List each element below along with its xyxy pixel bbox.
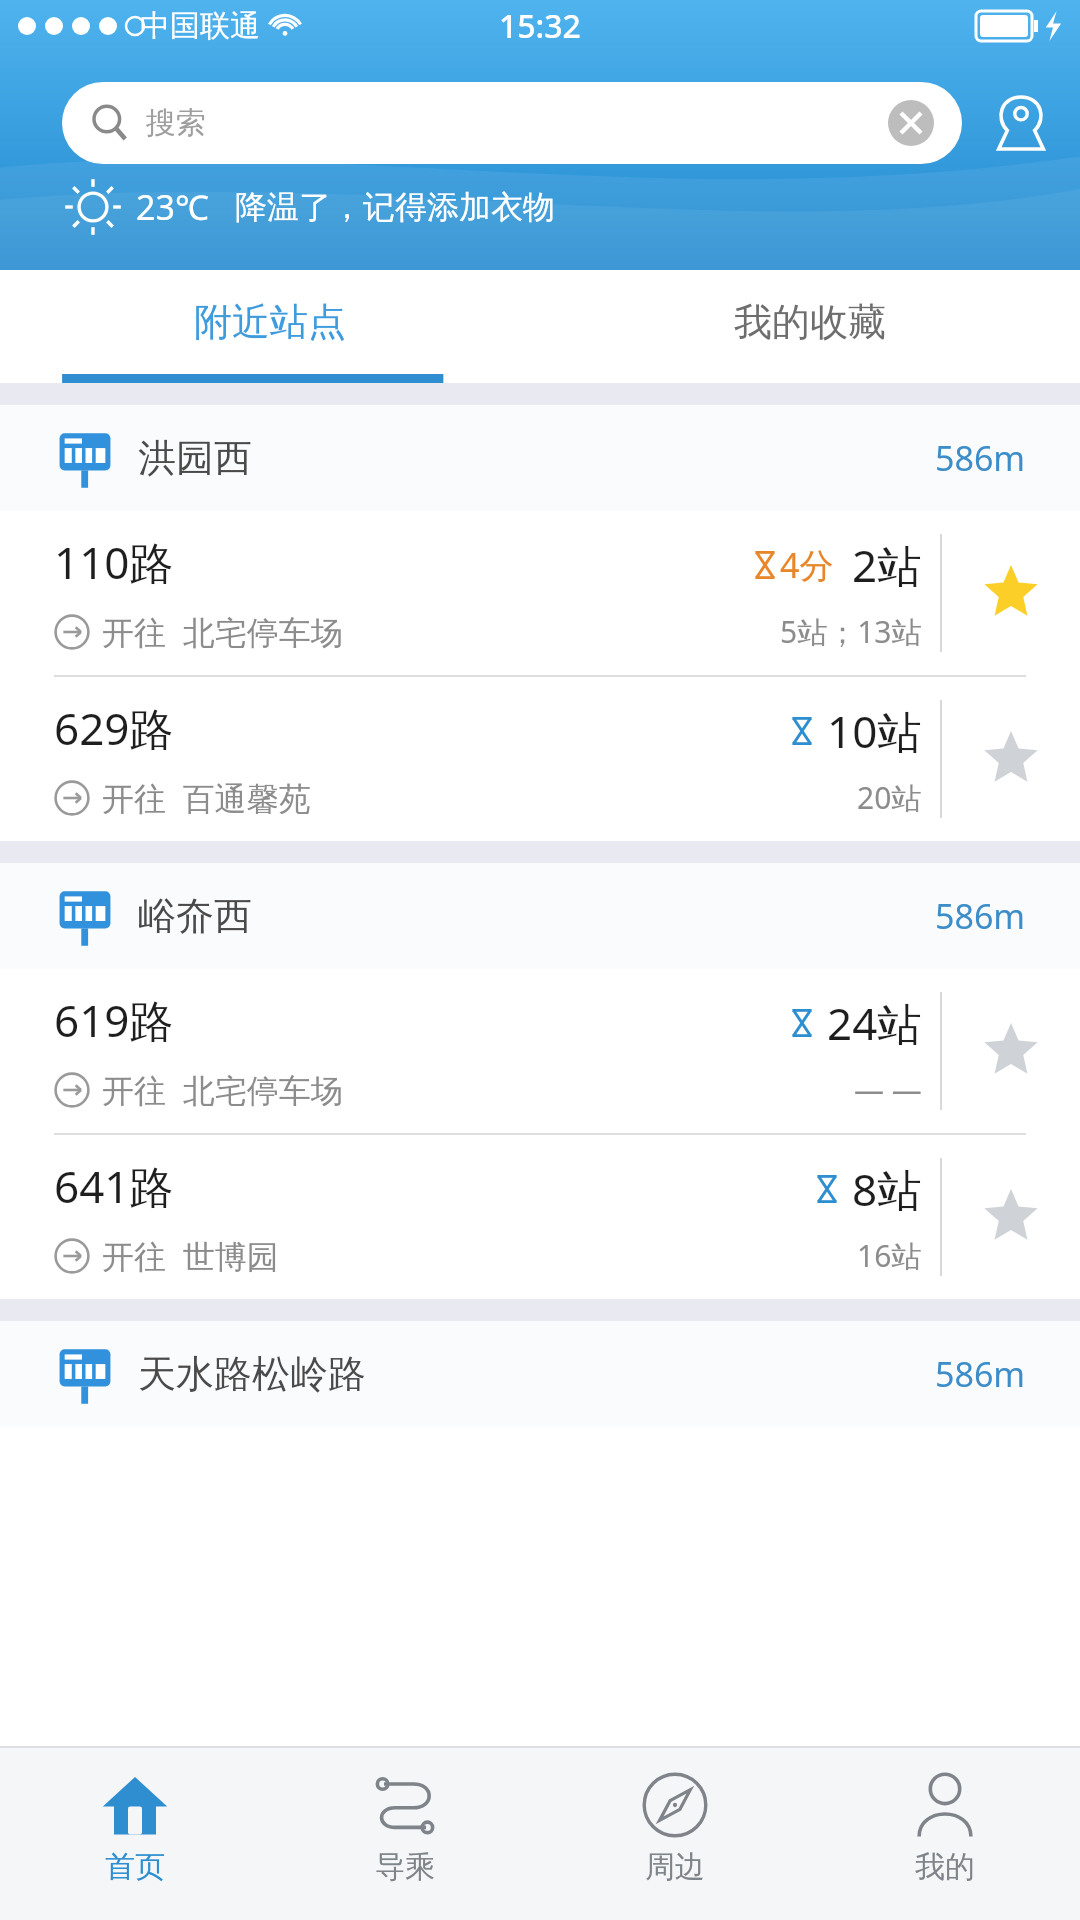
staticText: 586m <box>935 1351 1026 1397</box>
button[interactable]: 附近站点 <box>0 270 540 374</box>
staticText: 降温了，记得添加衣物 <box>235 187 555 227</box>
button[interactable]: 629路 <box>0 677 1080 841</box>
button[interactable]: 首页 <box>0 1748 270 1920</box>
staticText: 开往 世博园 <box>102 1234 279 1278</box>
staticText: 开往 北宅停车场 <box>102 1068 343 1112</box>
staticText: 586m <box>935 893 1026 939</box>
staticText: 23℃ <box>136 184 209 230</box>
staticText: 开往 北宅停车场 <box>102 610 343 654</box>
staticText: 641路 <box>54 1156 174 1216</box>
staticText: 20站 <box>857 777 922 818</box>
staticText: 中国联通 <box>140 7 260 45</box>
staticText: — — <box>854 1069 922 1110</box>
staticText: 附近站点 <box>194 298 346 346</box>
button[interactable]: 641路 <box>0 1135 1080 1299</box>
button[interactable]: 周边 <box>540 1748 810 1920</box>
staticText: 10站 <box>827 701 922 761</box>
staticText: 周边 <box>645 1848 705 1886</box>
staticText: 110路 <box>54 532 174 592</box>
button[interactable]: Clear <box>888 100 934 146</box>
staticText: 24站 <box>827 993 922 1053</box>
button[interactable]: 我的 <box>810 1748 1080 1920</box>
staticText: 5站；13站 <box>780 611 922 652</box>
staticText: 629路 <box>54 698 174 758</box>
staticText: 天水路松岭路 <box>138 1350 366 1398</box>
staticText: 我的 <box>915 1848 975 1886</box>
button[interactable]: Favorite <box>942 969 1080 1133</box>
staticText: 619路 <box>54 990 174 1050</box>
staticText: 开往 百通馨苑 <box>102 776 311 820</box>
staticText: 洪园西 <box>138 434 252 482</box>
button[interactable]: 搜索 <box>62 82 962 164</box>
staticText: 我的收藏 <box>734 298 886 346</box>
button[interactable]: 110路 <box>0 511 1080 677</box>
button[interactable]: 天水路松岭路 <box>0 1321 1080 1427</box>
staticText: 8站 <box>852 1159 922 1219</box>
button[interactable]: Favorite <box>942 677 1080 841</box>
staticText: 导乘 <box>375 1848 435 1886</box>
button[interactable]: Favorite <box>942 1135 1080 1299</box>
staticText: 16站 <box>857 1235 922 1276</box>
button[interactable]: Favorite <box>942 511 1080 675</box>
staticText: 首页 <box>105 1848 165 1886</box>
button[interactable]: Location <box>962 82 1080 164</box>
staticText: 搜索 <box>146 104 206 142</box>
button[interactable]: 导乘 <box>270 1748 540 1920</box>
button[interactable]: 我的收藏 <box>540 270 1080 374</box>
button[interactable]: 619路 <box>0 969 1080 1135</box>
button[interactable]: 洪园西 <box>0 405 1080 511</box>
staticText: 2站 <box>852 535 922 595</box>
staticText: 15:32 <box>499 4 581 48</box>
staticText: 4分 <box>780 542 834 588</box>
button[interactable]: 峪夼西 <box>0 863 1080 969</box>
staticText: 峪夼西 <box>138 892 252 940</box>
staticText: 586m <box>935 435 1026 481</box>
